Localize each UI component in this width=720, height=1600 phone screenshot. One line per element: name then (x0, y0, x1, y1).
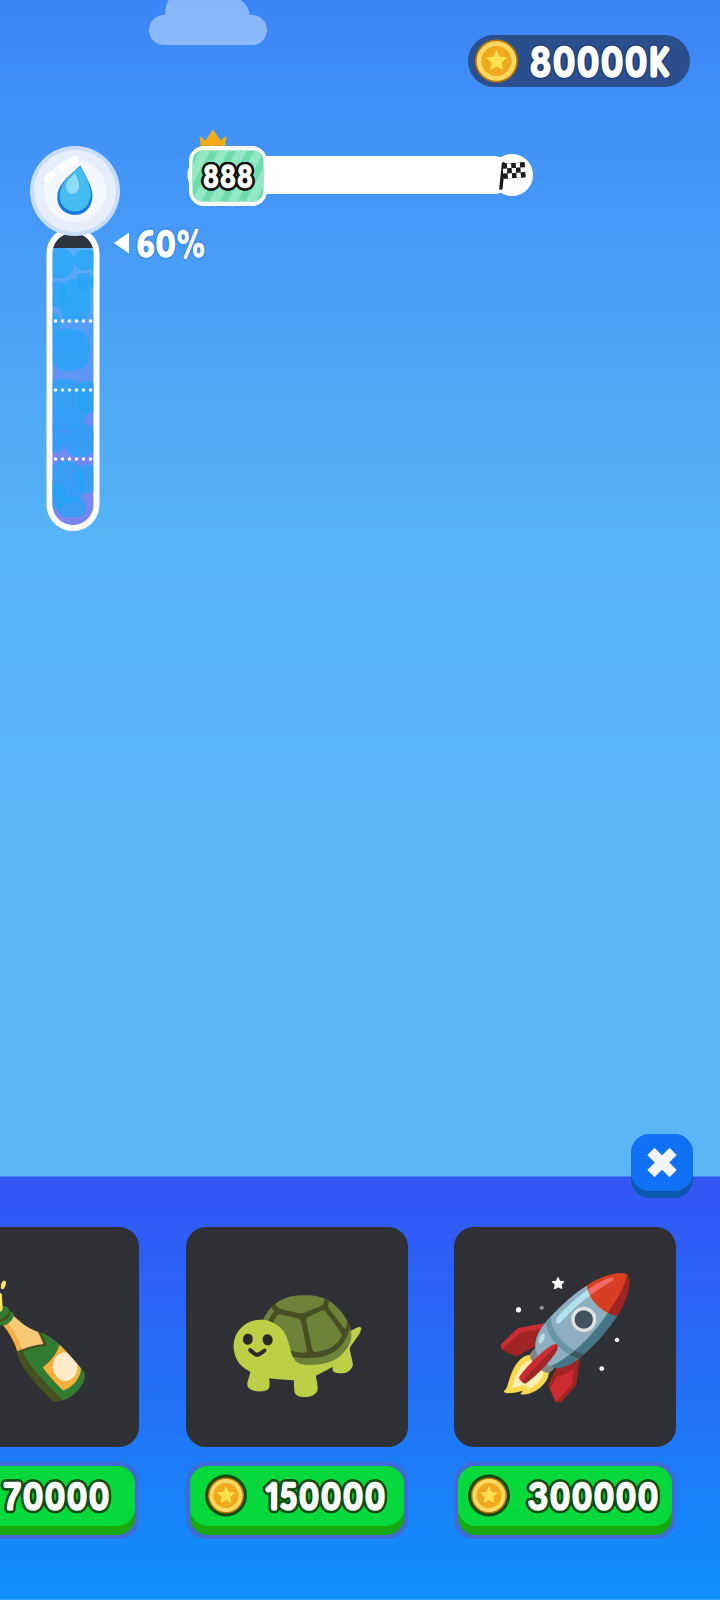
staticText: 70000 (1, 1473, 109, 1523)
staticText: 🚀 (492, 1270, 638, 1404)
staticText: 150000 (263, 1468, 385, 1518)
staticText: 70000 (4, 1470, 112, 1520)
button[interactable]: 80000K (468, 35, 690, 87)
staticText: 300000 (528, 1468, 660, 1518)
staticText: 150000 (262, 1470, 384, 1520)
staticText: 80000K (529, 32, 671, 87)
staticText: 70000 (4, 1469, 112, 1519)
staticText: 150000 (266, 1470, 388, 1520)
staticText: 60% (136, 219, 206, 267)
staticText: 300000 (525, 1471, 657, 1521)
staticText: 60% (136, 220, 206, 268)
staticText: 300000 (525, 1469, 657, 1519)
staticText: 70000 (3, 1468, 111, 1518)
staticText: 150000 (266, 1470, 388, 1520)
staticText: 150000 (264, 1473, 386, 1523)
staticText: 80000K (528, 33, 670, 88)
staticText: 300000 (529, 1469, 661, 1519)
staticText: 300000 (527, 1468, 659, 1518)
staticText: 60% (136, 218, 206, 266)
staticText: 80000K (528, 34, 670, 88)
staticText: 888 (202, 154, 253, 194)
staticText: 150000 (262, 1469, 384, 1519)
staticText: 888 (204, 157, 255, 198)
staticText: 70000 (2, 1470, 110, 1520)
staticText: 🍾 (0, 1270, 101, 1404)
staticText: 70000 (0, 1472, 108, 1522)
staticText: 80000K (530, 34, 672, 89)
staticText: 300000 (525, 1470, 657, 1520)
staticText: 60% (136, 220, 206, 268)
staticText: 150000 (265, 1473, 387, 1523)
staticText: 70000 (0, 1470, 108, 1520)
button[interactable]: Close (631, 1134, 693, 1198)
staticText: 150000 (262, 1472, 384, 1522)
staticText: 70000 (3, 1473, 111, 1523)
staticText: 888 (200, 157, 251, 197)
staticText: 888 (205, 156, 256, 196)
staticText: 300000 (529, 1472, 661, 1522)
staticText: 60% (137, 219, 207, 268)
staticText: 150000 (264, 1470, 386, 1520)
staticText: 60% (135, 218, 205, 266)
staticText: 60% (136, 220, 206, 268)
button[interactable]: 🍾 (0, 1227, 139, 1539)
staticText: 888 (203, 158, 254, 198)
staticText: 70000 (4, 1471, 112, 1521)
staticText: 300000 (527, 1473, 659, 1523)
staticText: 150000 (263, 1473, 385, 1523)
staticText: 70000 (0, 1470, 108, 1520)
staticText: 888 (205, 155, 256, 195)
staticText: 70000 (2, 1473, 110, 1523)
staticText: 888 (201, 154, 252, 194)
staticText: 888 (203, 154, 254, 194)
staticText: 60% (137, 219, 207, 268)
staticText: 888 (200, 155, 251, 195)
staticText: 300000 (529, 1470, 661, 1520)
staticText: 80000K (530, 33, 672, 88)
staticText: 888 (202, 158, 253, 198)
staticText: 80000K (530, 34, 672, 88)
staticText: 80000K (529, 35, 671, 90)
staticText: 150000 (262, 1470, 384, 1520)
staticText: 80000K (529, 32, 671, 87)
staticText: 80000K (528, 34, 670, 89)
staticText: 60% (135, 219, 205, 268)
staticText: 70000 (0, 1471, 108, 1521)
staticText: 888 (205, 157, 256, 197)
staticText: 300000 (529, 1471, 661, 1521)
staticText: 150000 (265, 1468, 387, 1518)
staticText: 60% (136, 218, 206, 266)
staticText: 80000K (528, 34, 670, 89)
staticText: 150000 (262, 1471, 384, 1521)
staticText: 60% (136, 218, 206, 266)
staticText: 300000 (525, 1472, 657, 1522)
staticText: 888 (202, 153, 253, 194)
staticText: 70000 (2, 1468, 110, 1518)
staticText: 80000K (528, 35, 670, 90)
staticText: 70000 (0, 1469, 108, 1519)
button[interactable]: 🐢 (186, 1227, 408, 1539)
staticText: 888 (202, 158, 253, 198)
staticText: 300000 (526, 1468, 658, 1518)
staticText: 70000 (4, 1472, 112, 1522)
staticText: 80000K (529, 35, 671, 90)
staticText: 300000 (525, 1470, 657, 1520)
staticText: 888 (204, 154, 255, 194)
staticText: 150000 (266, 1472, 388, 1522)
staticText: 150000 (266, 1471, 388, 1521)
staticText: 60% (135, 218, 205, 267)
staticText: 888 (200, 156, 251, 196)
staticText: 888 (202, 156, 253, 196)
button[interactable]: 🚀 (454, 1227, 676, 1539)
staticText: 300000 (528, 1473, 660, 1523)
staticText: 300000 (527, 1470, 659, 1520)
staticText: 60% (135, 219, 205, 268)
staticText: 70000 (4, 1470, 112, 1520)
staticText: 60% (137, 218, 207, 267)
staticText: 80000K (530, 34, 672, 89)
staticText: 80000K (528, 32, 670, 87)
staticText: 60% (135, 219, 205, 267)
staticText: 150000 (264, 1468, 386, 1518)
staticText: 60% (137, 219, 207, 267)
